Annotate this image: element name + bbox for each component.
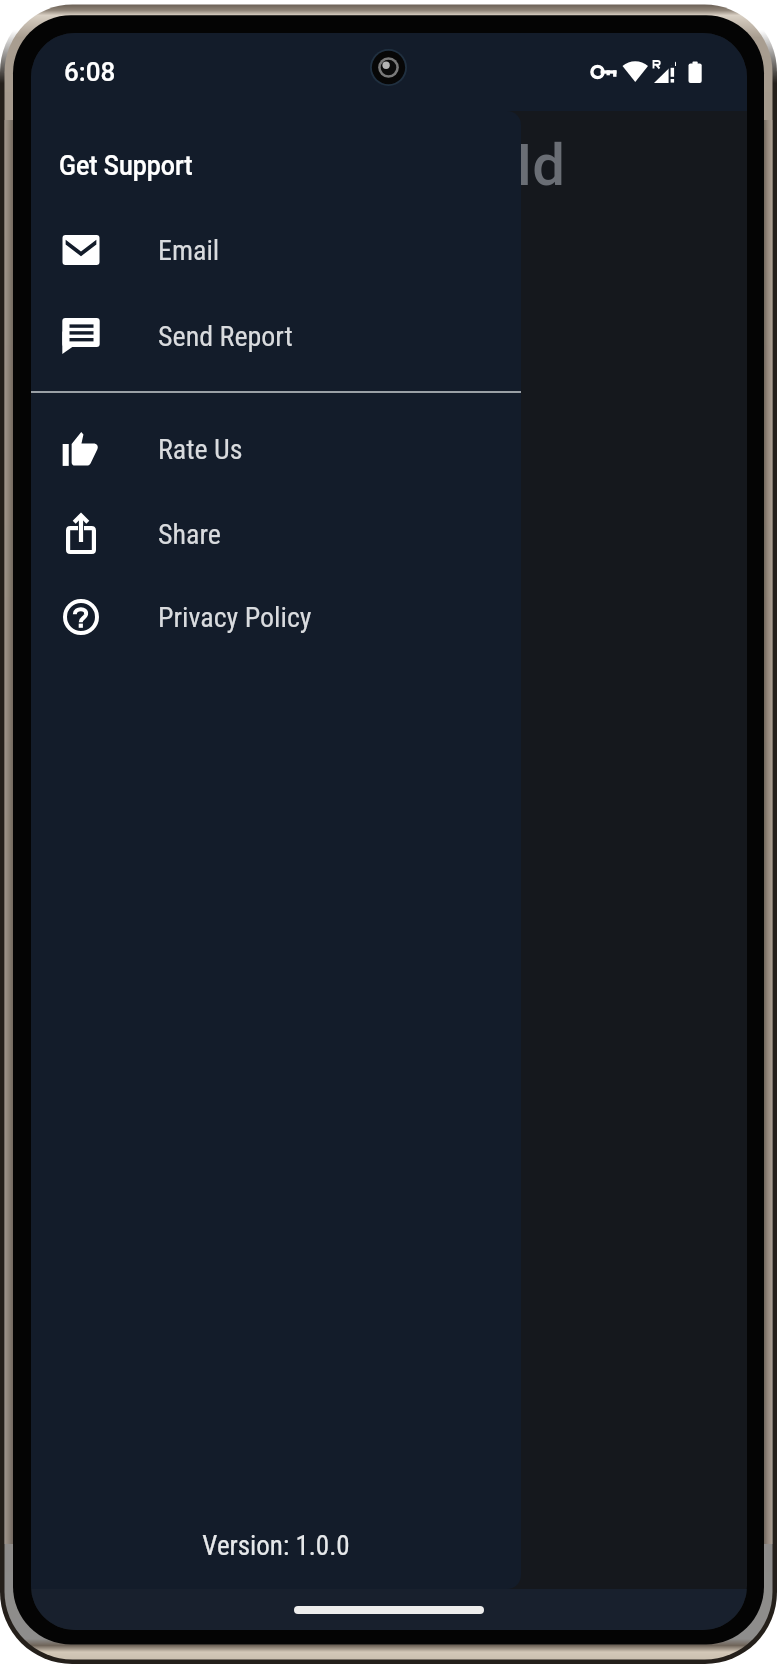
button[interactable]: Share [31, 492, 521, 576]
staticText: Send Report [158, 320, 293, 353]
staticText: Rate Us [158, 433, 243, 466]
button[interactable]: Privacy Policy [31, 575, 521, 659]
staticText: Privacy Policy [158, 601, 312, 634]
staticText: Get Support [59, 149, 193, 182]
staticText: Id [516, 131, 566, 199]
button[interactable]: Email [31, 208, 521, 292]
staticText: Email [158, 234, 220, 267]
staticText: Version: 1.0.0 [31, 1530, 521, 1562]
button[interactable]: Send Report [31, 294, 521, 378]
staticText: 6:08 [64, 57, 116, 87]
staticText: Share [158, 518, 221, 551]
button[interactable]: Rate Us [31, 407, 521, 491]
